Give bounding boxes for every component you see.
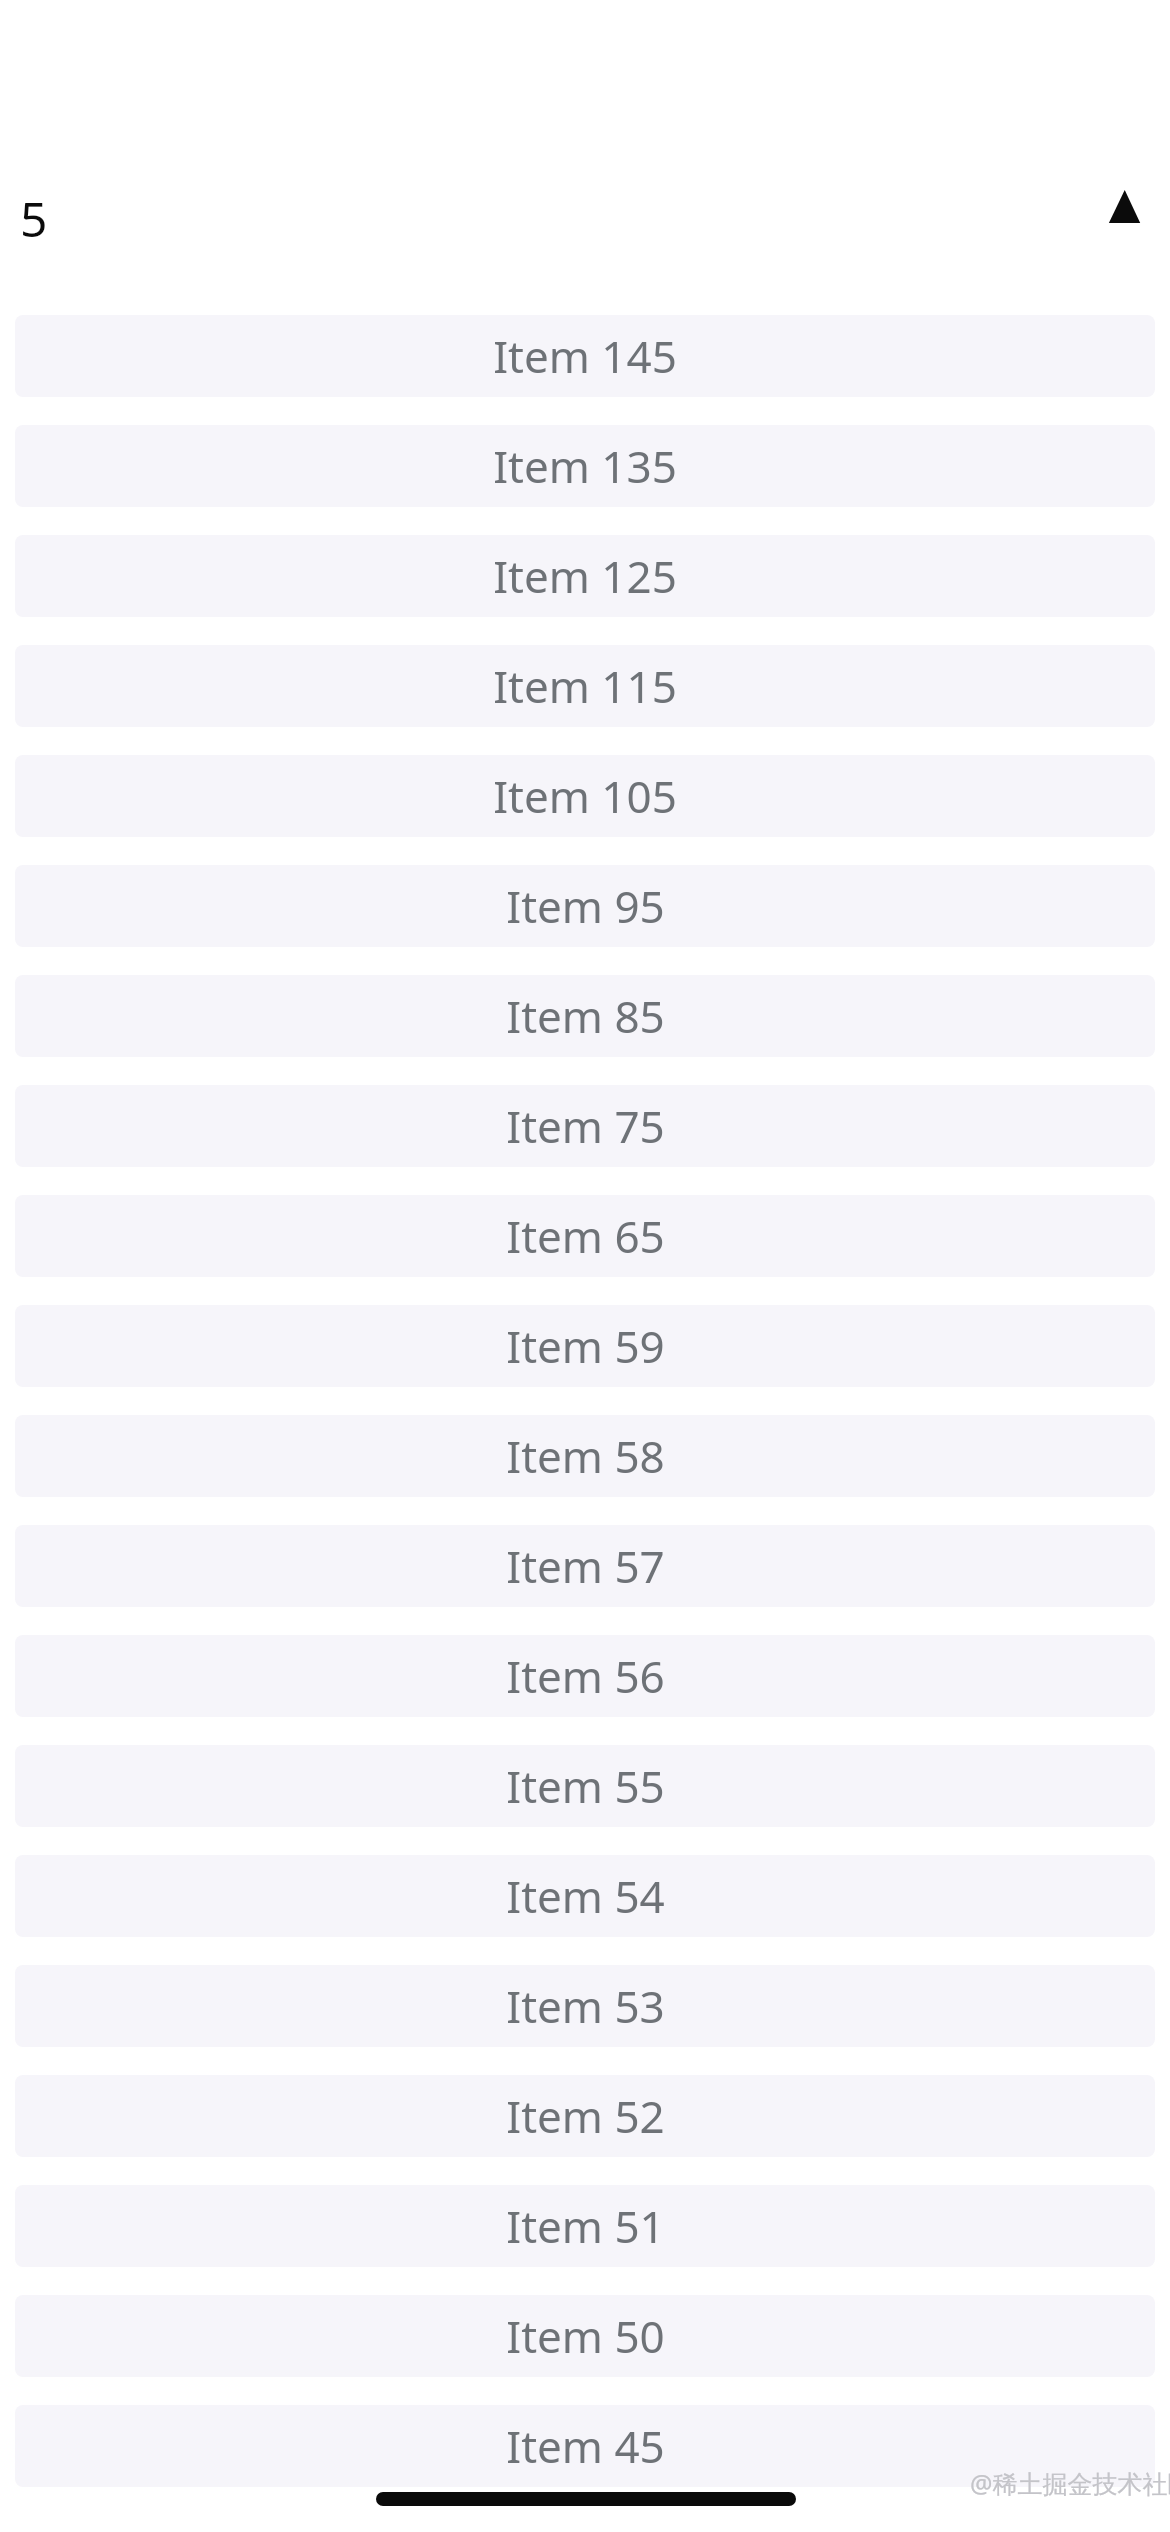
button[interactable]: Item 59 <box>15 1305 1155 1387</box>
button[interactable]: Item 58 <box>15 1415 1155 1497</box>
button[interactable]: Item 45 <box>15 2405 1155 2487</box>
button[interactable]: Item 105 <box>15 755 1155 837</box>
staticText: Item 58 <box>506 1426 665 1486</box>
button[interactable]: Item 50 <box>15 2295 1155 2377</box>
button[interactable]: Item 65 <box>15 1195 1155 1277</box>
staticText: 5 <box>20 186 48 251</box>
staticText: Item 50 <box>506 2306 665 2366</box>
staticText: Item 54 <box>506 1866 665 1926</box>
staticText: Item 53 <box>506 1976 665 2036</box>
button[interactable]: Item 53 <box>15 1965 1155 2047</box>
staticText: Item 51 <box>506 2196 665 2256</box>
staticText: @稀土掘金技术社区 <box>970 2466 1170 2500</box>
button[interactable]: Item 57 <box>15 1525 1155 1607</box>
button[interactable]: Item 135 <box>15 425 1155 507</box>
button[interactable]: Item 54 <box>15 1855 1155 1937</box>
staticText: Item 125 <box>493 546 677 606</box>
button[interactable]: Item 75 <box>15 1085 1155 1167</box>
button[interactable]: Item 52 <box>15 2075 1155 2157</box>
staticText: Item 56 <box>506 1646 665 1706</box>
staticText: Item 115 <box>493 656 677 716</box>
staticText: Item 75 <box>506 1096 665 1156</box>
staticText: Item 135 <box>493 436 677 496</box>
staticText: Item 59 <box>506 1316 665 1376</box>
staticText: Item 57 <box>506 1536 665 1596</box>
button[interactable]: Item 51 <box>15 2185 1155 2267</box>
staticText: Item 105 <box>493 766 677 826</box>
button[interactable]: Item 85 <box>15 975 1155 1057</box>
button[interactable]: Item 115 <box>15 645 1155 727</box>
staticText: Item 45 <box>506 2416 665 2476</box>
staticText: Item 95 <box>506 876 665 936</box>
staticText: Item 65 <box>506 1206 665 1266</box>
staticText: Item 85 <box>506 986 665 1046</box>
button[interactable]: Item 95 <box>15 865 1155 947</box>
button[interactable]: Item 145 <box>15 315 1155 397</box>
other: Signal strength <box>1106 190 1142 223</box>
button[interactable]: Item 125 <box>15 535 1155 617</box>
button[interactable]: Item 55 <box>15 1745 1155 1827</box>
staticText: Item 52 <box>506 2086 665 2146</box>
button[interactable]: Item 56 <box>15 1635 1155 1717</box>
staticText: Item 55 <box>506 1756 665 1816</box>
staticText: Item 145 <box>493 326 677 386</box>
